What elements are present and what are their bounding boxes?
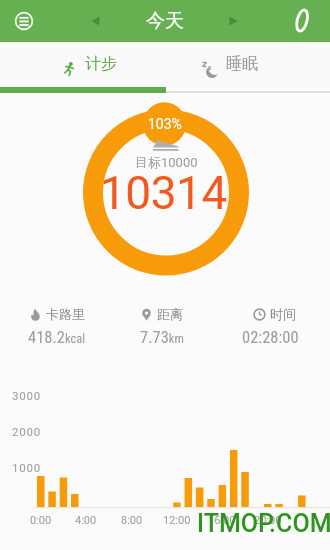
staticText: 10314	[100, 166, 227, 220]
staticText: 103%	[148, 116, 182, 132]
button[interactable]	[88, 15, 102, 29]
staticText: 16:00	[208, 514, 236, 527]
staticText: 距离	[157, 306, 183, 322]
staticText: 目标10000	[135, 154, 198, 170]
staticText: 4:00	[75, 514, 97, 527]
button[interactable]	[227, 15, 241, 29]
staticText: 3000	[12, 389, 42, 402]
staticText: 7.73km	[140, 328, 184, 347]
staticText: 8:00	[121, 514, 143, 527]
staticText: 0:00	[30, 514, 52, 527]
staticText: ITMOP.COM	[197, 509, 330, 538]
staticText: 今天	[146, 9, 184, 33]
staticText: 02:28:00	[242, 328, 299, 347]
staticText: 20:00	[254, 514, 282, 527]
button[interactable]	[288, 2, 318, 40]
button[interactable]: 睡眠	[165, 42, 330, 86]
staticText: 卡路里	[46, 306, 85, 322]
staticText: 418.2kcal	[28, 328, 86, 347]
button[interactable]: 计步	[0, 42, 165, 86]
button[interactable]	[15, 12, 33, 30]
staticText: 1000	[12, 461, 42, 474]
staticText: 计步	[85, 54, 117, 74]
staticText: 睡眠	[226, 54, 258, 74]
staticText: 12:00	[163, 514, 191, 527]
staticText: 2000	[12, 425, 42, 438]
staticText: 时间	[270, 306, 296, 322]
